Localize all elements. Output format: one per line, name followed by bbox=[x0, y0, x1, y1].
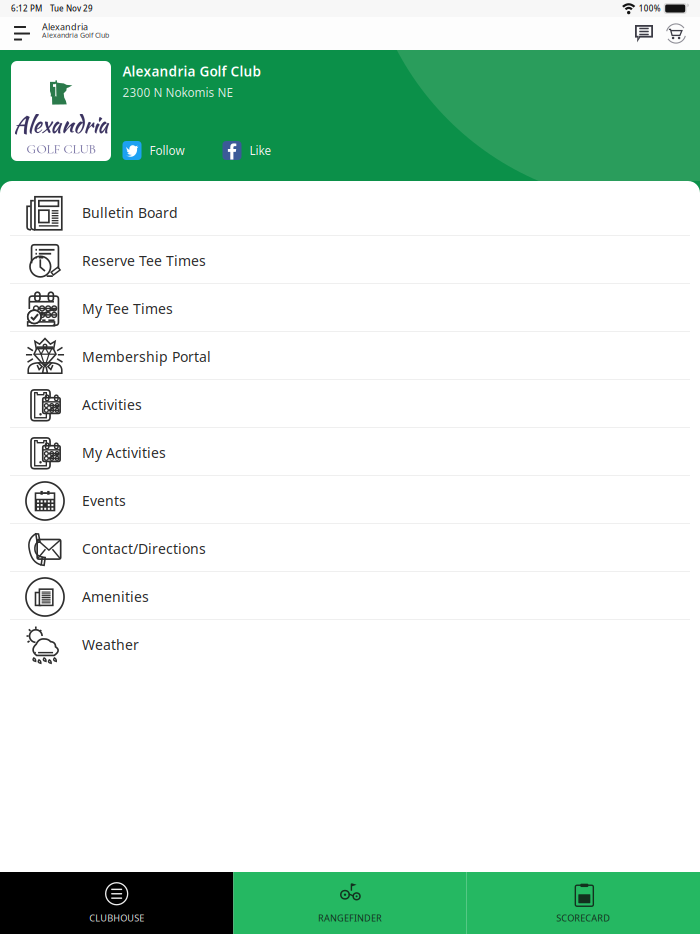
staticText: Amenities bbox=[82, 587, 149, 606]
staticText: Tue Nov 29 bbox=[50, 3, 93, 14]
staticText: 2300 N Nokomis NE bbox=[122, 84, 233, 100]
button[interactable]: Follow bbox=[122, 141, 184, 160]
button[interactable]: Bulletin Board bbox=[0, 181, 700, 236]
staticText: My Activities bbox=[82, 443, 166, 462]
button[interactable]: Messages bbox=[628, 17, 660, 50]
staticText: Alexandria Golf Club bbox=[42, 30, 109, 40]
staticText: GOLF CLUB bbox=[26, 141, 95, 157]
staticText: RANGEFINDER bbox=[318, 912, 382, 924]
button[interactable]: CLUBHOUSE bbox=[0, 872, 233, 934]
button[interactable]: Reserve Tee Times bbox=[0, 236, 700, 284]
staticText: Alexandria bbox=[42, 21, 88, 33]
button[interactable]: Contact/Directions bbox=[0, 524, 700, 572]
button[interactable]: Like bbox=[222, 141, 271, 160]
staticText: Weather bbox=[82, 635, 139, 654]
staticText: SCORECARD bbox=[556, 912, 610, 924]
button[interactable]: Menu bbox=[0, 17, 42, 50]
staticText: Bulletin Board bbox=[82, 203, 178, 222]
button[interactable]: RANGEFINDER bbox=[233, 872, 467, 934]
staticText: Events bbox=[82, 491, 126, 510]
button[interactable]: Events bbox=[0, 476, 700, 524]
button[interactable]: My Activities bbox=[0, 428, 700, 476]
button[interactable]: Activities bbox=[0, 380, 700, 428]
button[interactable]: Membership Portal bbox=[0, 332, 700, 380]
staticText: Membership Portal bbox=[82, 347, 211, 366]
staticText: Reserve Tee Times bbox=[82, 251, 206, 270]
staticText: CLUBHOUSE bbox=[89, 912, 144, 924]
button[interactable]: Cart bbox=[660, 17, 692, 50]
button[interactable]: Amenities bbox=[0, 572, 700, 620]
staticText: Alexandria bbox=[13, 108, 108, 141]
button[interactable]: Weather bbox=[0, 620, 700, 668]
staticText: Alexandria Golf Club bbox=[122, 62, 261, 80]
staticText: Activities bbox=[82, 395, 142, 414]
staticText: Follow bbox=[149, 142, 184, 158]
staticText: My Tee Times bbox=[82, 299, 173, 318]
staticText: 100% bbox=[639, 3, 661, 14]
button[interactable]: My Tee Times bbox=[0, 284, 700, 332]
staticText: 6:12 PM bbox=[11, 3, 42, 14]
staticText: Like bbox=[249, 142, 271, 158]
staticText: Contact/Directions bbox=[82, 539, 206, 558]
button[interactable]: SCORECARD bbox=[467, 872, 700, 934]
